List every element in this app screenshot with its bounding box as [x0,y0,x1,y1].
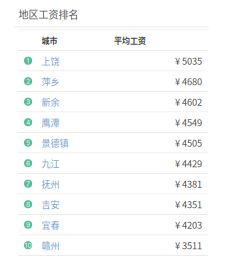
button[interactable]: 3 [18,92,208,112]
staticText: 城市 [41,34,57,46]
button[interactable]: 10 [18,235,208,256]
staticText: 吉安 [41,198,59,211]
staticText: ¥ 4680 [175,74,202,88]
staticText: ¥ 4429 [175,156,202,170]
button[interactable]: 6 [18,153,208,174]
staticText: ¥ 4203 [175,218,202,231]
staticText: 九江 [41,157,59,170]
staticText: ¥ 4381 [175,177,202,190]
staticText: 地区工资排名 [18,7,78,21]
staticText: ¥ 4549 [175,115,202,129]
button[interactable]: 5 [18,133,208,153]
staticText: 新余 [41,95,59,108]
staticText: 3 [26,98,30,106]
staticText: 景德镇 [41,136,68,149]
staticText: 9 [26,221,30,229]
staticText: ¥ 4602 [175,95,202,108]
staticText: 5 [26,139,30,147]
staticText: 1 [27,57,30,65]
staticText: 平均工资 [114,34,146,46]
staticText: 4 [26,118,30,126]
staticText: 10 [25,241,32,249]
staticText: ¥ 5035 [175,54,202,67]
button[interactable]: 8 [18,194,208,215]
staticText: 赣州 [41,239,59,252]
button[interactable]: 2 [18,71,208,92]
button[interactable]: 9 [18,215,208,235]
staticText: ¥ 3511 [175,238,202,252]
staticText: 8 [26,200,30,208]
button[interactable]: 1 [18,51,208,71]
staticText: 鹰潭 [41,116,59,129]
staticText: ¥ 4505 [175,136,202,149]
staticText: 7 [26,180,30,188]
button[interactable]: 4 [18,112,208,133]
staticText: 宜春 [41,218,59,231]
button[interactable]: 7 [18,174,208,194]
staticText: 萍乡 [41,75,59,88]
staticText: 上饶 [41,54,59,67]
staticText: 2 [26,77,30,85]
staticText: 抚州 [41,177,59,190]
staticText: 6 [26,159,30,167]
staticText: ¥ 4351 [175,197,202,211]
